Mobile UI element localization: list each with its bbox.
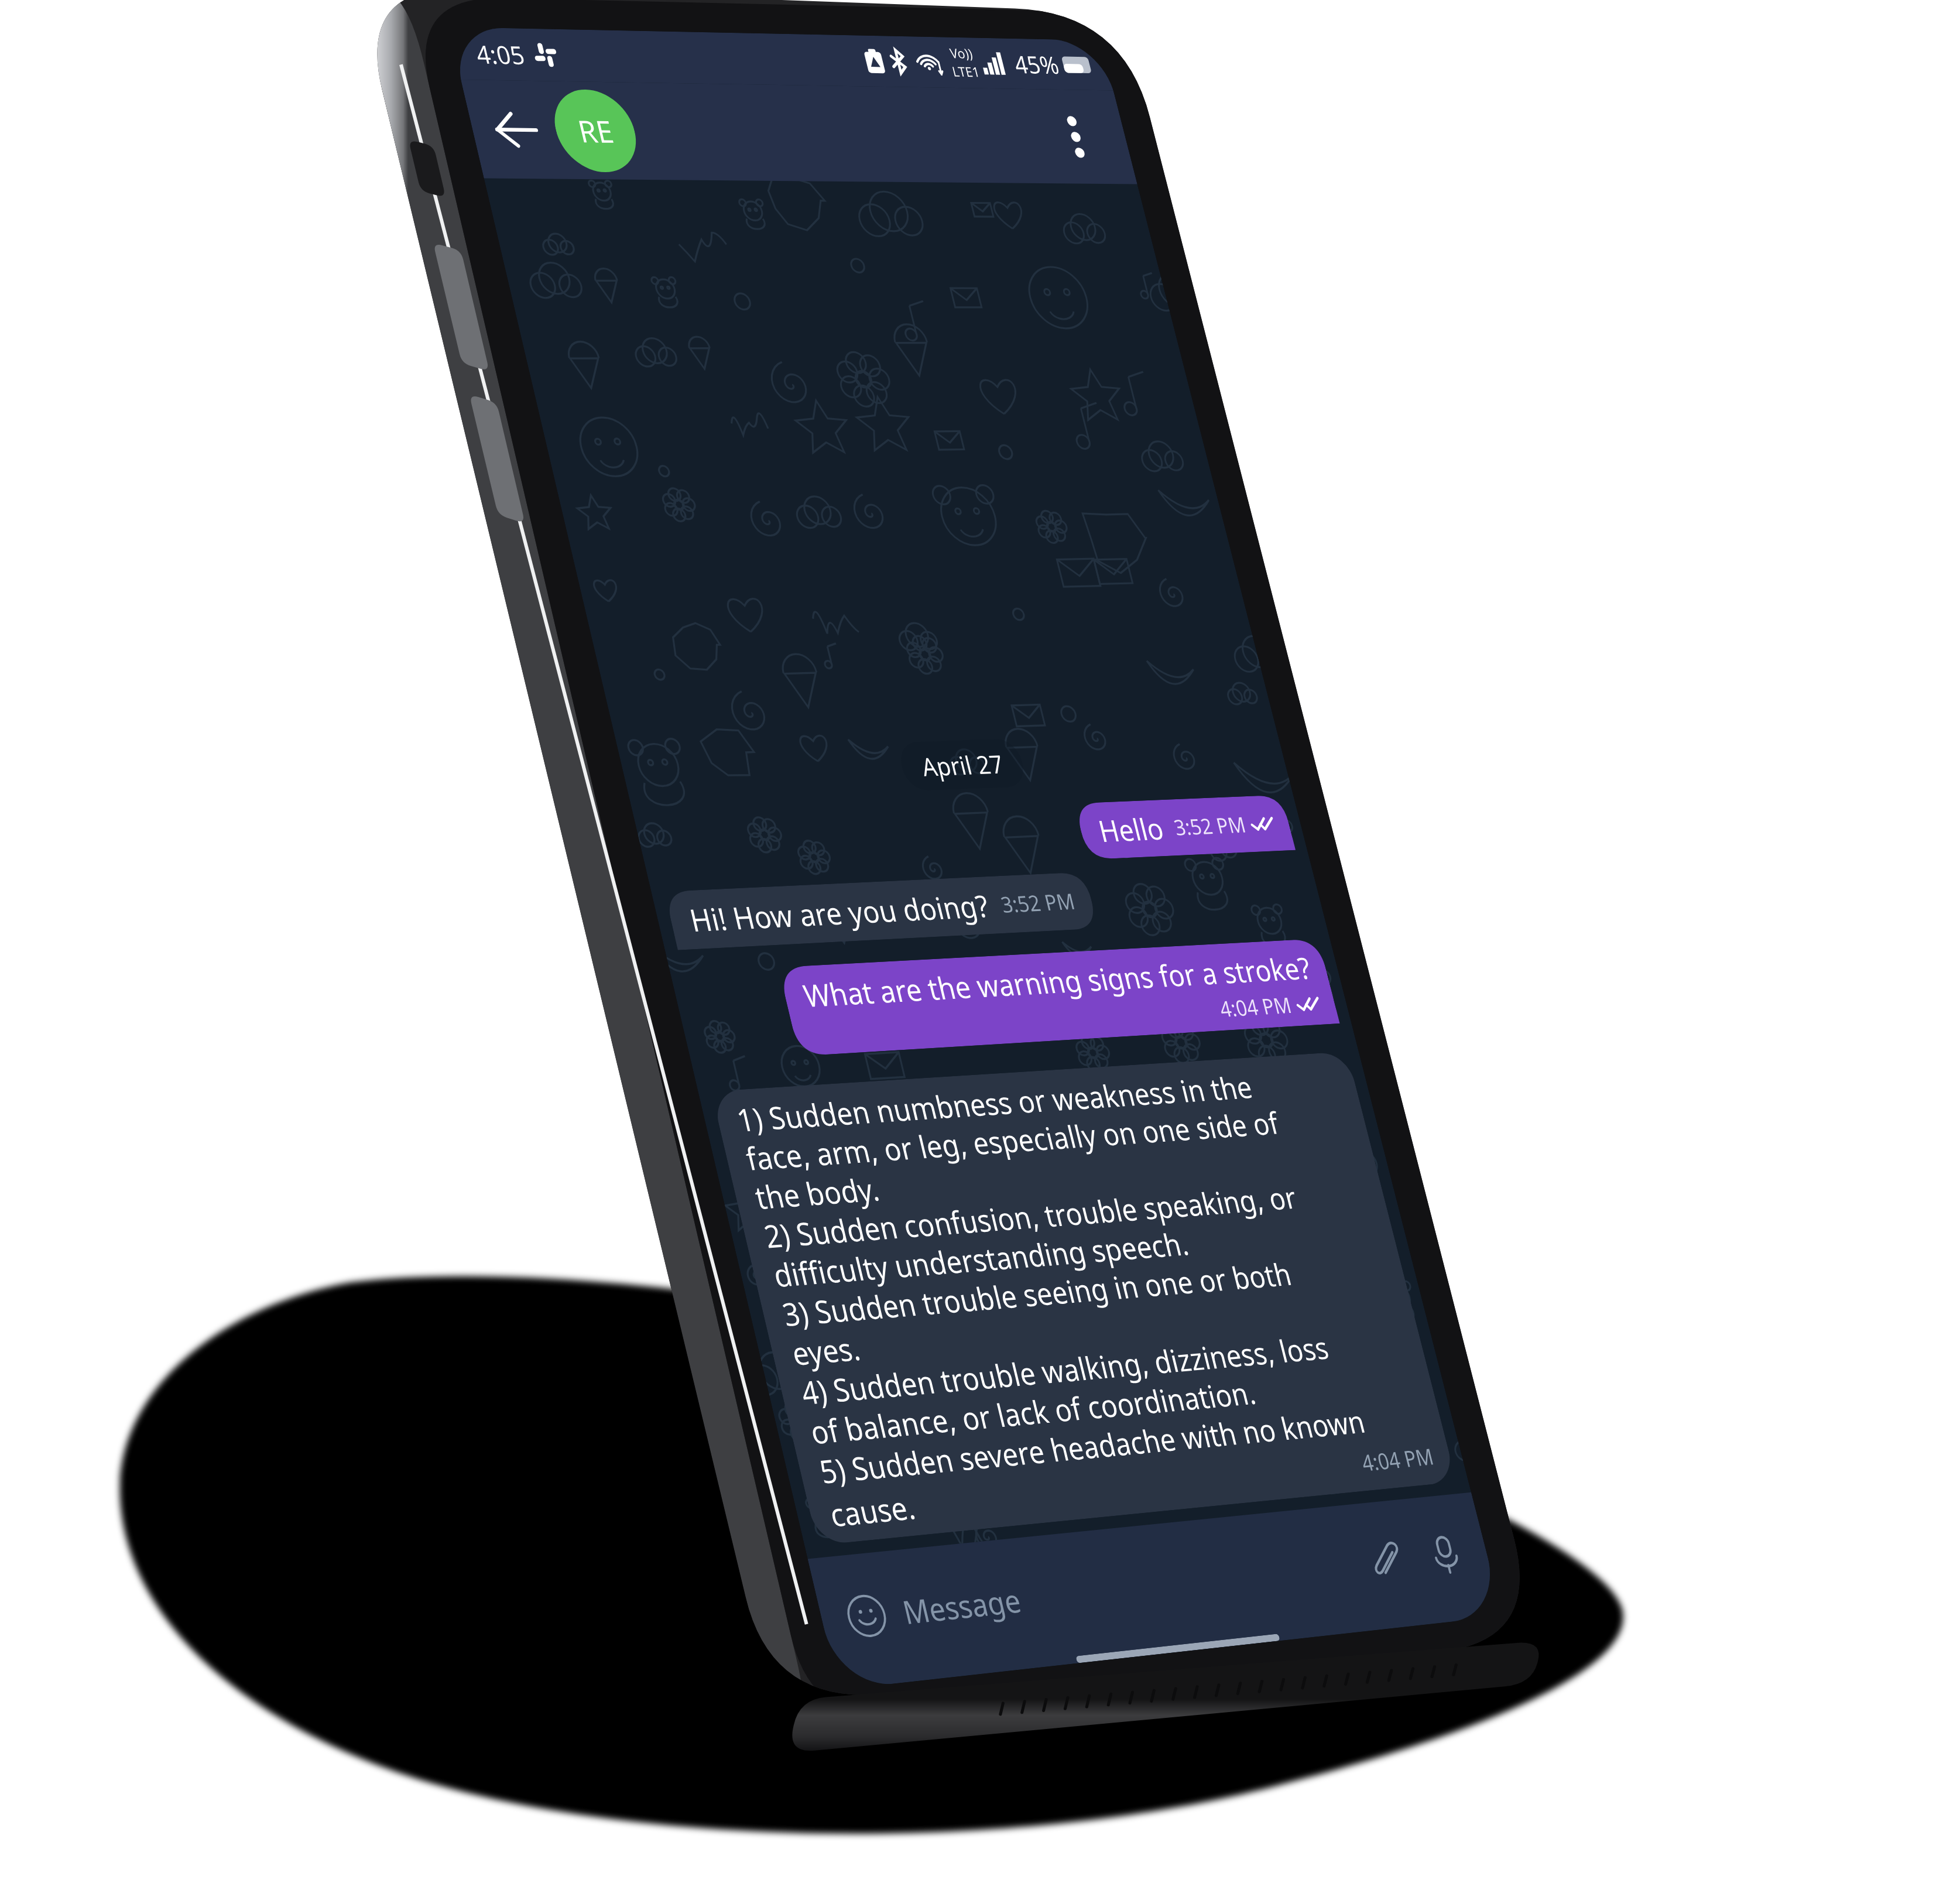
staticText: LTE1	[474, 23, 501, 40]
staticText: 45%	[539, 8, 583, 39]
button[interactable]: More options	[558, 67, 605, 114]
staticText: 4:04 PM	[506, 861, 577, 886]
button[interactable]: What are the warning signs for a stroke?	[99, 817, 621, 892]
button[interactable]: Hello	[414, 690, 621, 739]
staticText: 3:52 PM	[506, 701, 577, 727]
button[interactable]: 1) Sudden numbness or weakness in the fa…	[12, 917, 621, 1290]
staticText: What are the warning signs for a stroke?	[116, 824, 605, 860]
